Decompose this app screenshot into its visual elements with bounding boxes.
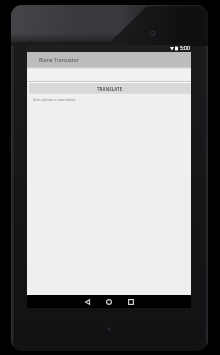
button[interactable]: Recent apps — [123, 296, 139, 308]
staticText: Enter a phrase or a word above — [33, 98, 76, 102]
staticText: Biene Translator — [39, 56, 79, 63]
button[interactable]: TRANSLATE — [29, 83, 191, 94]
button[interactable]: Back — [79, 296, 95, 308]
staticText: 5:00 — [180, 45, 190, 52]
staticText: TRANSLATE — [97, 86, 123, 92]
button[interactable]: Home — [101, 296, 117, 308]
